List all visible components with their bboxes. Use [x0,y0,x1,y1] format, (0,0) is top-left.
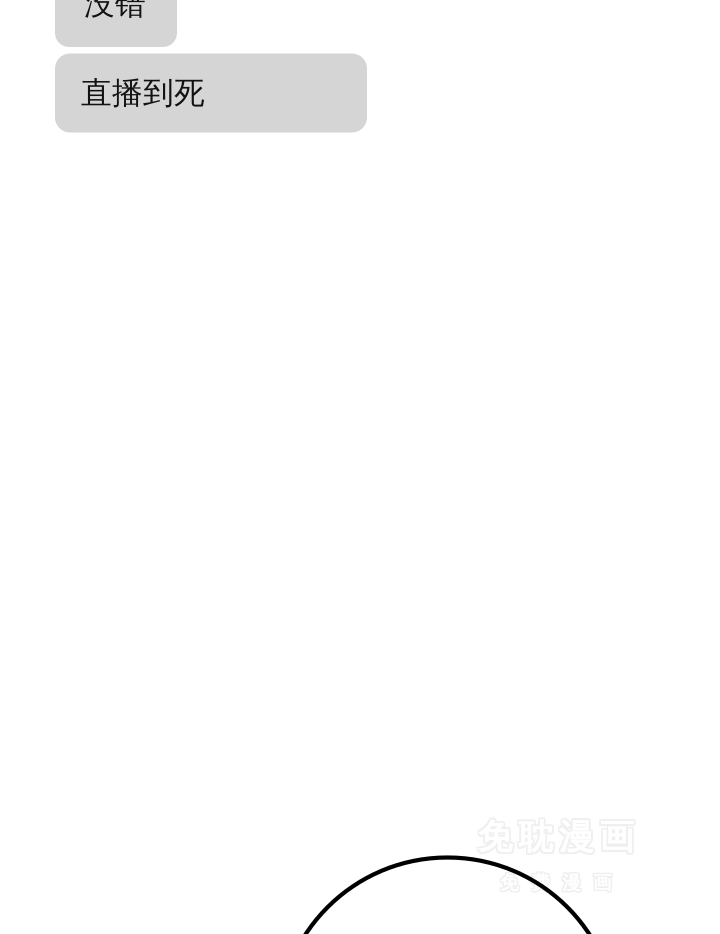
staticText: 免耽漫画 [476,814,633,857]
button[interactable]: 没错 [55,0,177,47]
button[interactable]: 直播到死 [55,53,367,132]
staticText: 免耽漫画 [478,816,634,858]
staticText: 免 费 漫 画 [500,870,612,893]
staticText: 免 费 漫 画 [501,871,613,894]
staticText: 免耽漫画 [476,816,633,858]
staticText: 免 费 漫 画 [501,873,613,895]
staticText: 免 费 漫 画 [500,871,612,894]
staticText: 免 费 漫 画 [499,871,611,894]
staticText: 没错 [84,0,146,23]
staticText: 免耽漫画 [479,816,636,858]
staticText: 直播到死 [81,74,205,112]
staticText: 免耽漫画 [478,814,634,857]
staticText: 免耽漫画 [478,817,634,860]
staticText: 免耽漫画 [479,817,636,860]
staticText: 免 费 漫 画 [500,873,612,895]
staticText: 免耽漫画 [476,817,633,860]
staticText: 免耽漫画 [479,814,636,857]
staticText: 免 费 漫 画 [501,870,613,893]
staticText: 免 费 漫 画 [499,873,611,895]
staticText: 免 费 漫 画 [499,870,611,893]
